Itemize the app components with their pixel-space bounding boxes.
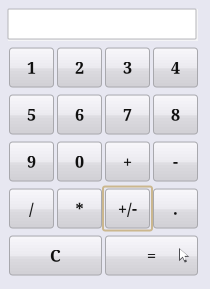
staticText: 4 [171, 57, 180, 78]
staticText: . [173, 198, 178, 219]
button[interactable]: 1 [9, 48, 53, 87]
staticText: - [173, 151, 178, 172]
staticText: C [50, 245, 61, 266]
staticText: 5 [27, 104, 36, 125]
staticText: / [29, 198, 34, 219]
button[interactable]: = [105, 236, 197, 275]
button[interactable]: 5 [9, 95, 53, 134]
button[interactable]: 4 [153, 48, 197, 87]
button[interactable]: 3 [105, 48, 149, 87]
button[interactable]: C [9, 236, 101, 275]
staticText: + [123, 151, 132, 172]
button[interactable]: * [57, 189, 101, 228]
button[interactable]: 8 [153, 95, 197, 134]
button[interactable]: / [9, 189, 53, 228]
staticText: 2 [75, 57, 84, 78]
button[interactable]: 2 [57, 48, 101, 87]
staticText: 9 [27, 151, 36, 172]
button[interactable]: +/- [105, 189, 149, 228]
button[interactable]: 9 [9, 142, 53, 181]
button[interactable]: 7 [105, 95, 149, 134]
button[interactable]: . [153, 189, 197, 228]
staticText: = [147, 245, 156, 266]
staticText: +/- [118, 198, 137, 219]
staticText: 3 [123, 57, 132, 78]
staticText: 1 [27, 57, 36, 78]
button[interactable]: - [153, 142, 197, 181]
staticText: 0 [75, 151, 84, 172]
button[interactable]: 0 [57, 142, 101, 181]
staticText: 7 [123, 104, 132, 125]
staticText: 6 [75, 104, 84, 125]
staticText: 8 [171, 104, 180, 125]
button[interactable]: + [105, 142, 149, 181]
button[interactable]: 6 [57, 95, 101, 134]
staticText: * [75, 198, 83, 219]
